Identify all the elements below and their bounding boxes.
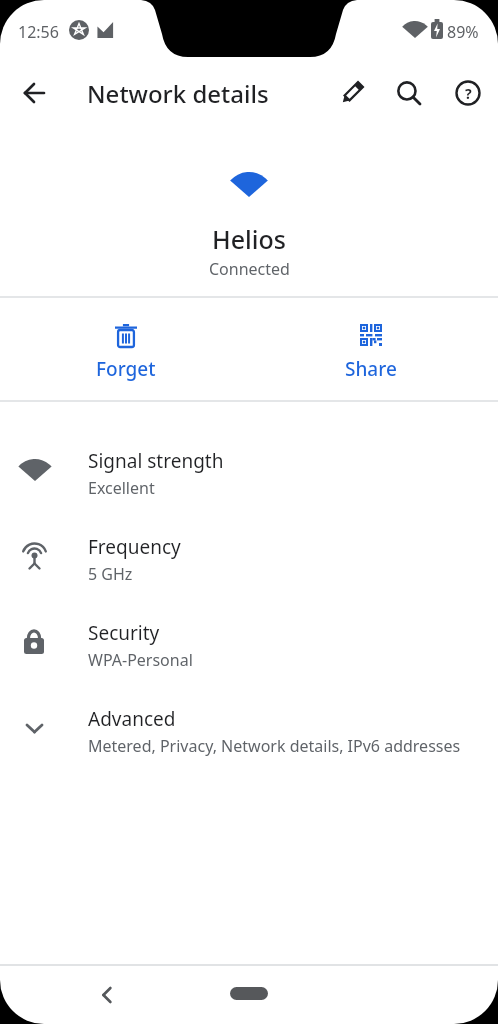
staticText: Frequency [88,534,181,560]
staticText: 89% [447,21,479,43]
staticText: Excellent [88,477,155,499]
staticText: 12:56 [18,21,59,43]
staticText: Security [88,620,160,646]
button[interactable]: Signal strength [0,448,498,534]
staticText: Share [345,356,397,382]
staticText: WPA-Personal [88,649,193,671]
staticText: Helios [212,222,286,256]
button[interactable] [339,80,365,106]
staticText: Signal strength [88,448,224,474]
staticText: 5 GHz [88,563,133,585]
button[interactable] [230,987,268,1000]
button[interactable]: Frequency [0,534,498,620]
staticText: Advanced [88,706,176,732]
button[interactable]: ? [455,80,481,106]
button[interactable]: Security [0,620,498,706]
staticText: Network details [87,77,269,110]
staticText: Connected [209,258,290,280]
button[interactable] [396,80,422,106]
button[interactable] [92,980,122,1010]
staticText: ? [465,84,472,103]
staticText: Metered, Privacy, Network details, IPv6 … [88,735,461,757]
button[interactable]: Share [311,324,431,394]
button[interactable] [24,82,45,104]
button[interactable]: Advanced [0,706,498,792]
button[interactable]: Forget [66,324,186,394]
staticText: Forget [96,356,156,382]
